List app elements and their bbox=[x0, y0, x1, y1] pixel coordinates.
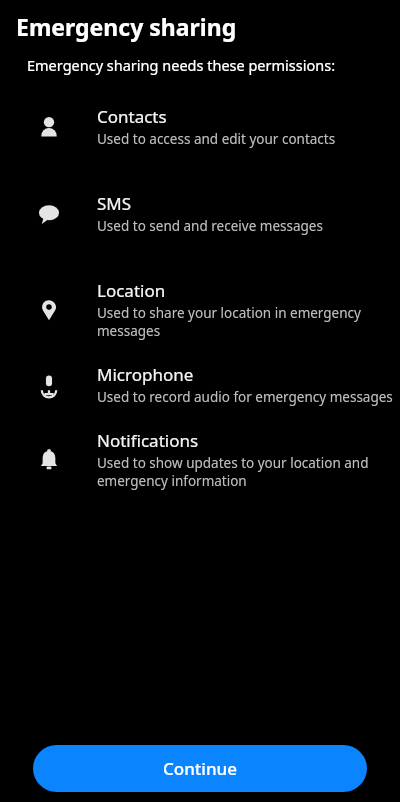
staticText: Used to share your location in emergency… bbox=[97, 304, 398, 340]
button[interactable]: SMS bbox=[0, 192, 400, 235]
staticText: Contacts bbox=[97, 105, 167, 128]
staticText: Emergency sharing needs these permission… bbox=[27, 55, 336, 75]
staticText: Microphone bbox=[97, 363, 194, 386]
other: Microphone bbox=[0, 373, 97, 397]
staticText: Location bbox=[97, 279, 166, 302]
other: Location bbox=[0, 298, 97, 322]
staticText: Notifications bbox=[97, 429, 199, 452]
other: Contacts bbox=[0, 115, 97, 139]
staticText: Emergency sharing bbox=[16, 11, 237, 42]
button[interactable]: Continue bbox=[33, 745, 367, 792]
other: SMS bbox=[0, 202, 97, 226]
button[interactable]: Microphone bbox=[0, 363, 400, 406]
staticText: Used to record audio for emergency messa… bbox=[97, 388, 393, 406]
button[interactable]: Location bbox=[0, 279, 400, 340]
staticText: Used to show updates to your location an… bbox=[97, 454, 398, 490]
staticText: SMS bbox=[97, 192, 132, 215]
staticText: Used to send and receive messages bbox=[97, 217, 323, 235]
staticText: Continue bbox=[163, 757, 238, 780]
other: Notifications bbox=[0, 448, 97, 472]
button[interactable]: Notifications bbox=[0, 429, 400, 490]
button[interactable]: Contacts bbox=[0, 105, 400, 148]
staticText: Used to access and edit your contacts bbox=[97, 130, 336, 148]
